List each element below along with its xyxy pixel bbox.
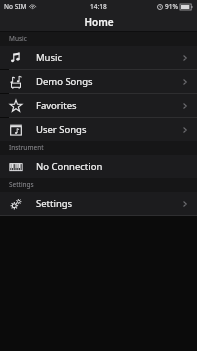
staticText: Instrument <box>9 143 44 152</box>
staticText: Settings <box>9 180 34 189</box>
staticText: 91% <box>165 2 178 11</box>
button[interactable]: No Connection <box>0 155 197 178</box>
staticText: Settings <box>36 197 73 210</box>
button[interactable]: Favorites <box>0 94 197 117</box>
staticText: Favorites <box>36 99 77 112</box>
staticText: Home <box>84 15 114 29</box>
button[interactable]: User Songs <box>0 118 197 141</box>
staticText: 14:18 <box>90 2 107 11</box>
staticText: No SIM <box>4 2 27 11</box>
staticText: Music <box>9 34 27 43</box>
staticText: User Songs <box>36 123 87 136</box>
staticText: Demo Songs <box>36 75 93 88</box>
staticText: No Connection <box>36 160 103 173</box>
staticText: Music <box>36 51 63 64</box>
button[interactable]: Settings <box>0 192 197 215</box>
button[interactable]: Music <box>0 46 197 69</box>
button[interactable]: Demo Songs <box>0 70 197 93</box>
